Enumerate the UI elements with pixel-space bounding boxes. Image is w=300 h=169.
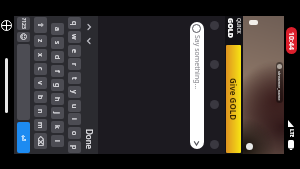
button[interactable]: e — [68, 45, 81, 57]
staticText: o — [69, 131, 79, 136]
staticText: 10:44 — [286, 32, 296, 50]
staticText: ⌫ — [36, 136, 44, 146]
button[interactable]: f — [51, 65, 64, 77]
staticText: v — [35, 81, 45, 85]
staticText: f — [52, 70, 62, 73]
button[interactable]: Give GOLD — [226, 45, 241, 153]
staticText: z — [35, 39, 45, 43]
staticText: a — [52, 27, 62, 31]
button[interactable]: streamer_name — [276, 62, 283, 103]
button[interactable]: n — [34, 105, 47, 117]
button[interactable]: z — [34, 35, 47, 47]
staticText: k — [52, 125, 62, 129]
button[interactable]: v — [34, 77, 47, 89]
staticText: j — [52, 112, 62, 114]
button[interactable]: Camera — [246, 143, 253, 150]
staticText: w — [69, 34, 79, 40]
button[interactable]: More — [210, 140, 219, 149]
staticText: s — [52, 41, 62, 45]
staticText: ⇧ — [36, 22, 44, 28]
staticText: LTE — [288, 129, 295, 138]
staticText: streamer_name — [277, 71, 282, 101]
button[interactable]: a — [51, 23, 64, 35]
staticText: ☺ — [19, 33, 27, 41]
staticText: h — [52, 97, 62, 102]
staticText: ⏎ — [19, 135, 27, 141]
button[interactable]: b — [34, 91, 47, 103]
staticText: c — [35, 67, 45, 71]
button[interactable]: p — [68, 141, 81, 153]
button[interactable]: x — [34, 49, 47, 61]
button[interactable]: Say something... — [190, 22, 204, 149]
staticText: d — [52, 55, 62, 60]
button[interactable]: Collapse — [84, 36, 94, 46]
button[interactable]: l — [51, 135, 64, 147]
button[interactable]: j — [51, 107, 64, 119]
button[interactable]: Expand — [84, 22, 94, 32]
staticText: l — [52, 140, 62, 142]
staticText: Give GOLD — [228, 78, 239, 121]
button[interactable]: g — [51, 79, 64, 91]
staticText: QUICK — [235, 18, 242, 34]
staticText: t — [69, 77, 79, 80]
button[interactable]: t — [68, 72, 81, 84]
staticText: q — [69, 21, 79, 26]
button[interactable]: ⇧ — [34, 17, 47, 33]
button[interactable]: o — [68, 127, 81, 139]
button[interactable]: u — [68, 100, 81, 112]
button[interactable]: h — [51, 93, 64, 105]
button[interactable]: Gift — [210, 21, 219, 30]
button[interactable]: y — [68, 86, 81, 98]
button[interactable]: i — [68, 113, 81, 125]
button[interactable]: ?123 — [17, 17, 30, 30]
button[interactable]: Change language — [1, 20, 12, 31]
button[interactable]: w — [68, 31, 81, 43]
staticText: p — [69, 145, 79, 150]
staticText: x — [35, 53, 45, 57]
button[interactable]: r — [68, 58, 81, 70]
staticText: Say something... — [192, 35, 202, 90]
staticText: GOLD — [225, 18, 235, 38]
button[interactable]: q — [68, 17, 81, 29]
staticText: Done — [84, 129, 95, 150]
button[interactable]: Share — [210, 60, 219, 69]
button[interactable]: Like — [210, 100, 219, 109]
button[interactable]: m — [34, 119, 47, 131]
button[interactable]: c — [34, 63, 47, 75]
staticText: m — [35, 122, 45, 129]
button[interactable]: s — [51, 37, 64, 49]
button[interactable]: Done — [84, 129, 95, 150]
button[interactable]: ☺ — [17, 32, 30, 42]
staticText: r — [69, 63, 79, 66]
button[interactable]: d — [51, 51, 64, 63]
staticText: n — [35, 109, 45, 114]
staticText: e — [69, 49, 79, 53]
button[interactable]: Send — [17, 122, 30, 153]
staticText: ?123 — [20, 18, 27, 29]
staticText: g — [52, 83, 62, 88]
staticText: y — [69, 90, 79, 94]
staticText: i — [69, 118, 79, 120]
button[interactable]: ⌫ — [34, 133, 47, 149]
button[interactable]: k — [51, 121, 64, 133]
staticText: u — [69, 104, 79, 109]
staticText: b — [35, 95, 45, 100]
